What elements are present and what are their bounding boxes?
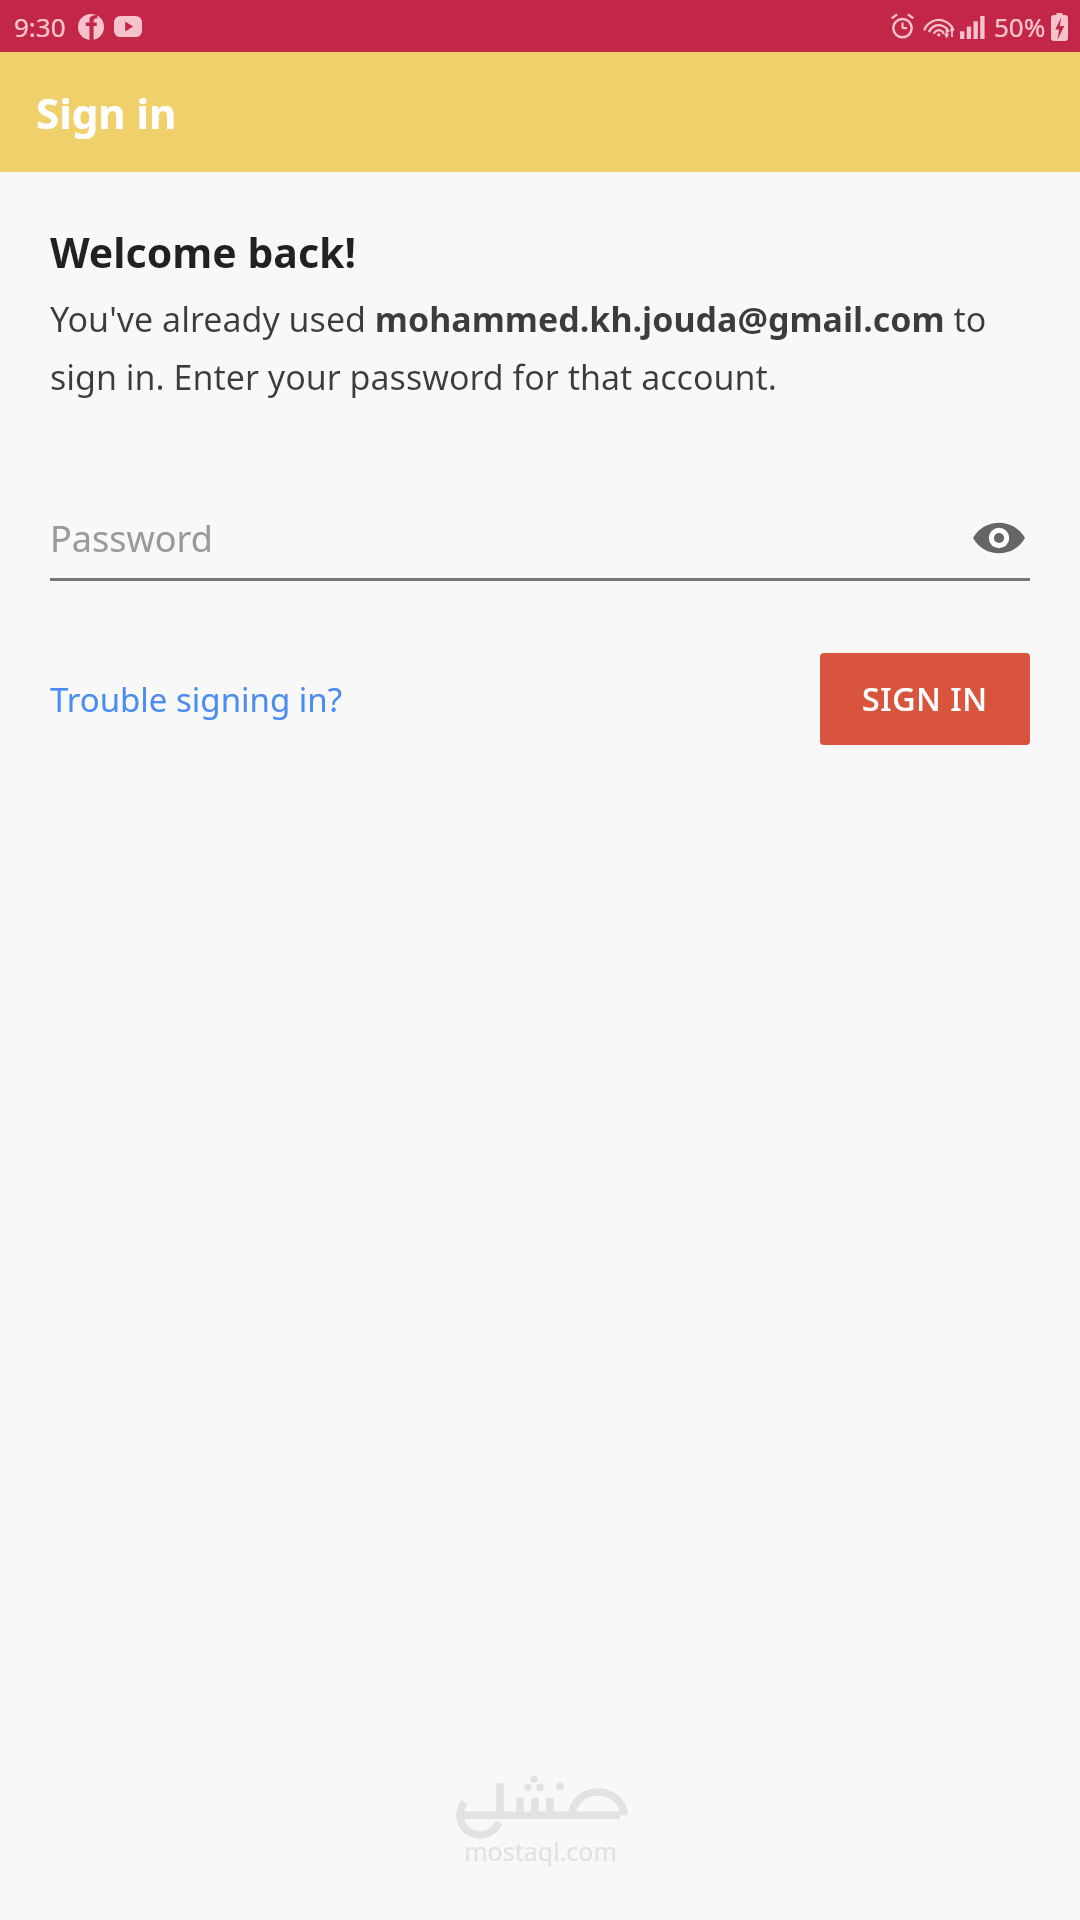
- staticText: 50%: [994, 9, 1046, 44]
- button[interactable]: Trouble signing in?: [50, 667, 343, 732]
- staticText: Sign in: [36, 84, 177, 141]
- staticText: Password: [50, 514, 213, 563]
- staticText: 9:30: [14, 9, 66, 44]
- staticText: Welcome back!: [50, 224, 357, 280]
- button[interactable]: SIGN IN: [820, 653, 1030, 745]
- staticText: SIGN IN: [862, 677, 988, 721]
- staticText: Trouble signing in?: [50, 677, 343, 722]
- staticText: You've already used mohammed.kh.jouda@gm…: [50, 296, 1030, 400]
- staticText: mostaql.com: [464, 1834, 617, 1868]
- button[interactable]: Password: [50, 498, 1030, 578]
- button[interactable]: Show password: [968, 507, 1030, 569]
